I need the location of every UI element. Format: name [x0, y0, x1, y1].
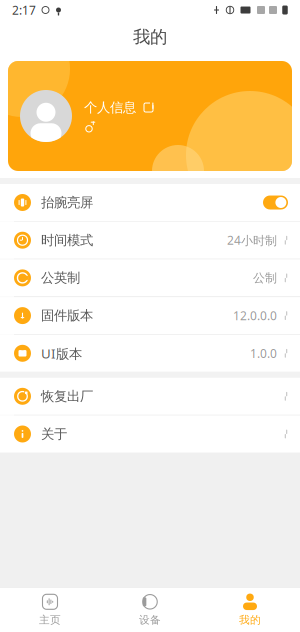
- staticText: 1.0.0: [250, 345, 277, 361]
- button[interactable]: 个人信息: [8, 61, 292, 171]
- button[interactable]: 设备: [100, 588, 200, 632]
- staticText: 2:17: [12, 2, 36, 18]
- staticText: 个人信息: [84, 99, 136, 116]
- staticText: 我的: [239, 613, 261, 626]
- staticText: 24小时制: [227, 232, 277, 248]
- staticText: 主页: [39, 613, 61, 626]
- staticText: 关于: [41, 426, 67, 442]
- staticText: 12.0.0.0: [233, 308, 277, 323]
- staticText: 公英制: [41, 270, 80, 286]
- button[interactable]: 关于: [0, 415, 300, 452]
- button[interactable]: 公英制: [0, 259, 300, 296]
- button[interactable]: 抬腕亮屏: [0, 184, 300, 221]
- button[interactable]: 我的: [200, 588, 300, 632]
- staticText: 我的: [133, 26, 167, 48]
- button[interactable]: 恢复出厂: [0, 378, 300, 415]
- staticText: 抬腕亮屏: [41, 194, 93, 211]
- button[interactable]: 主页: [0, 588, 100, 632]
- button[interactable]: UI版本: [0, 335, 300, 372]
- staticText: 时间模式: [41, 232, 93, 248]
- button[interactable]: 时间模式: [0, 222, 300, 259]
- staticText: 固件版本: [41, 307, 93, 324]
- staticText: 恢复出厂: [41, 388, 93, 404]
- staticText: UI版本: [41, 344, 82, 362]
- button[interactable]: 固件版本: [0, 297, 300, 334]
- staticText: 公制: [253, 270, 277, 285]
- staticText: 设备: [139, 613, 161, 626]
